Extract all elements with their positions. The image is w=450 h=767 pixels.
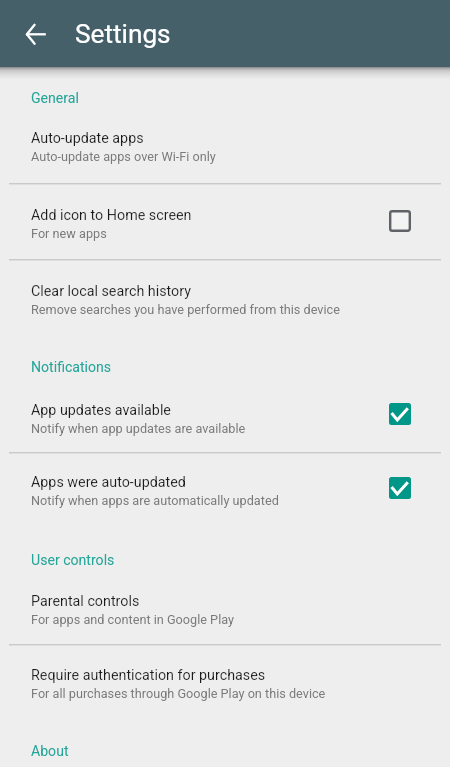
button[interactable]: Parental controls bbox=[0, 571, 450, 645]
staticText: Require authentication for purchases bbox=[31, 667, 266, 684]
staticText: Settings bbox=[75, 19, 171, 50]
button[interactable]: Checked bbox=[383, 471, 417, 505]
staticText: Add icon to Home screen bbox=[31, 207, 192, 224]
button[interactable]: Unchecked bbox=[383, 204, 417, 238]
staticText: Parental controls bbox=[31, 593, 140, 610]
staticText: Notify when app updates are available bbox=[31, 421, 246, 436]
button[interactable]: Auto-update apps bbox=[0, 108, 450, 185]
button[interactable]: App updates available bbox=[0, 380, 450, 452]
staticText: About bbox=[31, 743, 69, 760]
staticText: Notify when apps are automatically updat… bbox=[31, 493, 279, 508]
staticText: Apps were auto-updated bbox=[31, 474, 186, 491]
button[interactable]: Add icon to Home screen bbox=[0, 185, 450, 261]
staticText: Clear local search history bbox=[31, 283, 191, 300]
staticText: For all purchases through Google Play on… bbox=[31, 686, 326, 701]
staticText: General bbox=[31, 90, 79, 107]
staticText: User controls bbox=[31, 552, 115, 569]
staticText: For new apps bbox=[31, 226, 107, 241]
staticText: Notifications bbox=[31, 359, 112, 376]
button[interactable]: Require authentication for purchases bbox=[0, 645, 450, 720]
button[interactable]: Apps were auto-updated bbox=[0, 452, 450, 529]
staticText: For apps and content in Google Play bbox=[31, 612, 235, 627]
button[interactable]: Clear local search history bbox=[0, 261, 450, 336]
staticText: Auto-update apps bbox=[31, 130, 144, 147]
button[interactable]: Back bbox=[13, 12, 57, 56]
button[interactable]: Checked bbox=[383, 397, 417, 431]
staticText: Remove searches you have performed from … bbox=[31, 302, 340, 317]
staticText: Auto-update apps over Wi-Fi only bbox=[31, 149, 216, 164]
staticText: App updates available bbox=[31, 402, 171, 419]
